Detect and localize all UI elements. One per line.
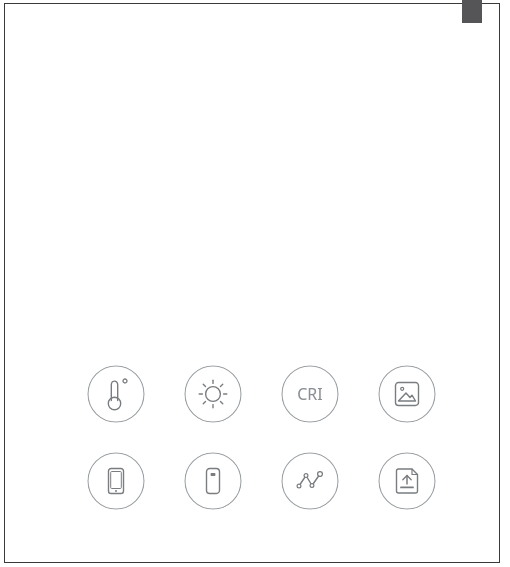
- button[interactable]: Sensor: [184, 452, 242, 510]
- button[interactable]: Brightness: [184, 365, 242, 423]
- button[interactable]: Temperature: [87, 365, 145, 423]
- button[interactable]: Upload file: [378, 452, 436, 510]
- button[interactable]: CRI: [281, 365, 339, 423]
- button[interactable]: Chart: [281, 452, 339, 510]
- staticText: CRI: [297, 383, 323, 405]
- button[interactable]: Image: [378, 365, 436, 423]
- button[interactable]: Phone: [87, 452, 145, 510]
